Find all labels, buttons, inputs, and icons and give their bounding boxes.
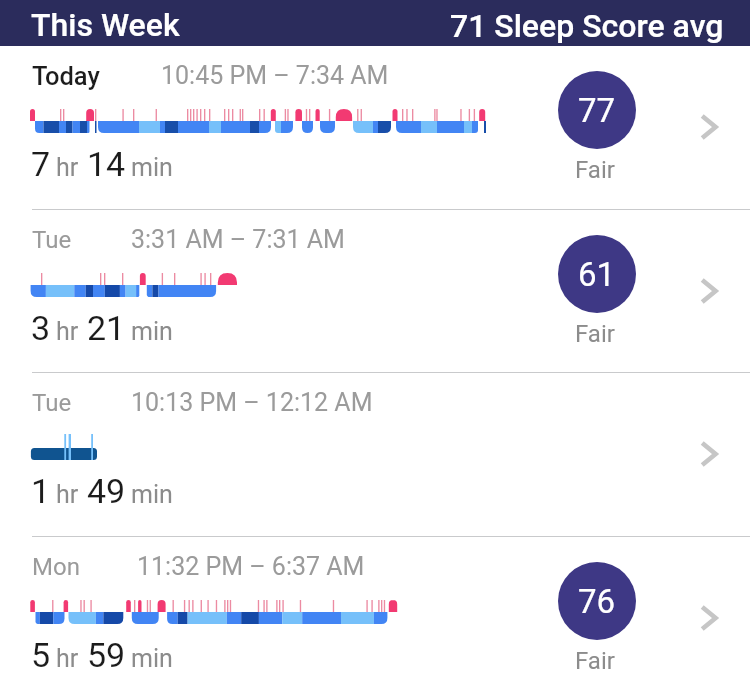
staticText: Today (32, 61, 100, 91)
staticText: 10:13 PM – 12:12 AM (131, 388, 373, 417)
staticText: Tue (32, 389, 72, 417)
staticText: 14 (87, 144, 126, 184)
button[interactable]: This Week (0, 0, 750, 46)
button[interactable]: Open sleep details (680, 423, 740, 484)
staticText: min (131, 153, 173, 182)
staticText: This Week (31, 6, 180, 44)
staticText: hr (56, 153, 79, 182)
button[interactable]: Open sleep details (680, 587, 740, 648)
staticText: 49 (87, 471, 126, 511)
staticText: 21 (87, 308, 126, 348)
button[interactable]: Today (0, 46, 750, 210)
staticText: 77 (578, 91, 616, 130)
staticText: 1 (31, 471, 51, 511)
staticText: Fair (575, 320, 615, 348)
staticText: 7 (31, 144, 51, 184)
staticText: 71 Sleep Score avg (450, 7, 724, 45)
staticText: 5 (31, 635, 51, 675)
staticText: Fair (575, 156, 615, 184)
button[interactable]: Open sleep details (680, 96, 740, 157)
staticText: min (131, 317, 173, 346)
staticText: 11:32 PM – 6:37 AM (137, 552, 365, 581)
staticText: 59 (87, 635, 126, 675)
staticText: Fair (575, 647, 615, 675)
button[interactable]: Open sleep details (680, 260, 740, 321)
staticText: hr (56, 480, 79, 509)
button[interactable]: Tue (0, 373, 750, 537)
staticText: min (131, 480, 173, 509)
staticText: 3 (31, 308, 51, 348)
staticText: hr (56, 317, 79, 346)
staticText: Tue (32, 226, 72, 254)
button[interactable]: Mon (0, 537, 750, 692)
staticText: 10:45 PM – 7:34 AM (161, 61, 389, 90)
staticText: 61 (578, 255, 616, 294)
staticText: 76 (578, 582, 616, 621)
button[interactable]: Tue (0, 210, 750, 374)
staticText: min (131, 644, 173, 673)
staticText: Mon (32, 553, 80, 581)
staticText: hr (56, 644, 79, 673)
staticText: 3:31 AM – 7:31 AM (131, 225, 345, 254)
